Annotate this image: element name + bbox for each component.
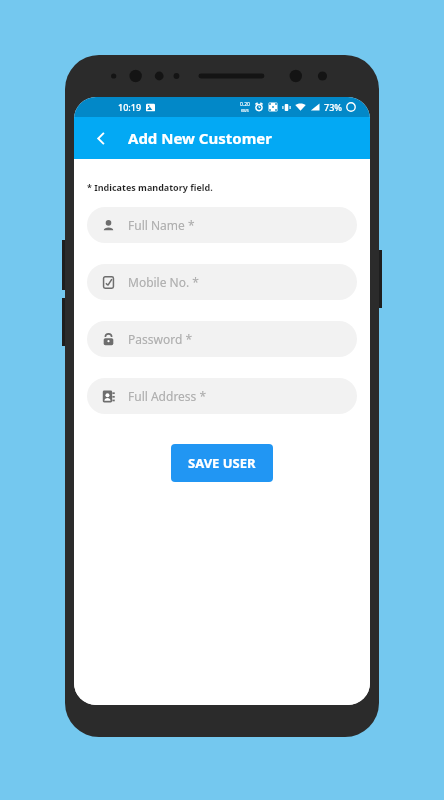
staticText: 73%: [324, 101, 342, 113]
button[interactable]: Full Name *: [87, 207, 357, 243]
staticText: Mobile No. *: [128, 274, 199, 290]
staticText: KB/S: [241, 108, 249, 113]
staticText: 0.20: [240, 101, 250, 108]
button[interactable]: SAVE USER: [171, 444, 273, 482]
button[interactable]: Password *: [87, 321, 357, 357]
staticText: SAVE USER: [188, 454, 256, 472]
staticText: Add New Customer: [128, 128, 272, 148]
staticText: Full Address *: [128, 388, 207, 404]
staticText: 10:19: [118, 101, 142, 113]
staticText: * Indicates mandatory field.: [87, 181, 213, 193]
button[interactable]: Mobile No. *: [87, 264, 357, 300]
button[interactable]: Back: [84, 121, 118, 155]
staticText: Password *: [128, 331, 193, 347]
button[interactable]: Full Address *: [87, 378, 357, 414]
staticText: Full Name *: [128, 217, 195, 233]
